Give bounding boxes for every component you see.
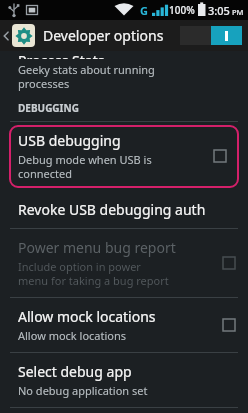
- staticText: Include option in power menu for taking …: [18, 259, 169, 288]
- button[interactable]: Select debug app: [0, 353, 248, 407]
- staticText: Geeky stats about running processes: [18, 62, 155, 91]
- button[interactable]: Checkbox, unchecked: [207, 143, 233, 169]
- staticText: Debug mode when USB is connected: [18, 152, 152, 181]
- staticText: Allow mock locations: [18, 307, 156, 326]
- staticText: USB debugging: [18, 131, 121, 150]
- staticText: Allow mock locations: [18, 328, 127, 343]
- staticText: G: [140, 3, 148, 18]
- button[interactable]: Checkbox, unchecked: [216, 312, 242, 338]
- button[interactable]: Power menu bug report: [0, 229, 248, 297]
- button[interactable]: Process Stats: [0, 51, 248, 91]
- staticText: Select debug app: [18, 362, 132, 381]
- staticText: 100%: [169, 3, 195, 17]
- button[interactable]: Allow mock locations: [0, 298, 248, 352]
- button[interactable]: Navigate up: [0, 22, 37, 49]
- staticText: No debug application set: [18, 383, 148, 398]
- staticText: DEBUGGING: [18, 101, 79, 115]
- button[interactable]: Checkbox, unchecked: [216, 250, 242, 276]
- button[interactable]: Revoke USB debugging auth: [0, 191, 248, 228]
- staticText: Process Stats: [18, 51, 105, 59]
- button[interactable]: USB debugging: [9, 125, 239, 188]
- staticText: Developer options: [43, 26, 164, 45]
- staticText: Revoke USB debugging auth: [18, 200, 206, 219]
- staticText: PM: [232, 7, 244, 17]
- staticText: Power menu bug report: [18, 238, 176, 257]
- button[interactable]: Toggle developer options on: [180, 26, 242, 45]
- staticText: 3:05: [208, 3, 230, 18]
